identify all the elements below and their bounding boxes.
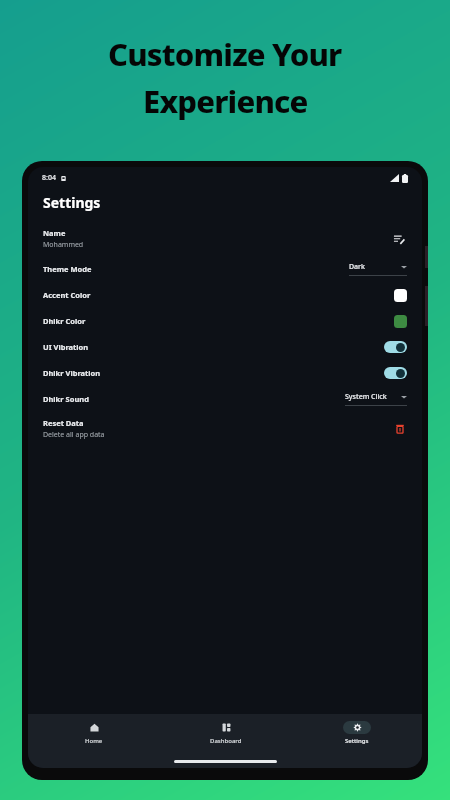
staticText: Settings <box>345 737 369 745</box>
staticText: Customize Your <box>108 33 342 75</box>
button[interactable]: Settings <box>291 714 422 752</box>
staticText: Home <box>85 737 103 745</box>
staticText: Dark <box>349 262 365 272</box>
staticText: Dhikr Vibration <box>43 368 101 378</box>
staticText: 8:04 <box>42 173 56 183</box>
staticText: Experience <box>143 80 308 122</box>
staticText: Mohammed <box>43 240 84 250</box>
staticText: Dhikr Sound <box>43 394 89 404</box>
staticText: Dhikr Color <box>43 316 86 326</box>
staticText: Theme Mode <box>43 264 92 274</box>
button[interactable]: Pick color <box>394 289 407 302</box>
button[interactable]: Dashboard <box>160 714 291 752</box>
button[interactable]: Home <box>28 714 160 752</box>
button[interactable]: Name <box>43 226 407 252</box>
other: Delete all app data <box>393 422 407 436</box>
button[interactable]: UI Vibration <box>43 334 407 360</box>
staticText: System Click <box>345 392 387 402</box>
staticText: UI Vibration <box>43 342 89 352</box>
button[interactable]: Reset Data <box>43 416 407 442</box>
button[interactable]: Dhikr Sound <box>43 386 407 412</box>
staticText: Dashboard <box>210 737 242 745</box>
button[interactable]: Toggle <box>384 341 407 353</box>
button[interactable]: Dhikr Color <box>43 308 407 334</box>
button[interactable]: Pick color <box>394 315 407 328</box>
staticText: Reset Data <box>43 418 84 428</box>
button[interactable]: Toggle <box>384 367 407 379</box>
staticText: Settings <box>43 193 101 212</box>
button[interactable]: Accent Color <box>43 282 407 308</box>
staticText: Name <box>43 228 66 238</box>
other: Edit name <box>391 231 407 247</box>
button[interactable]: Dhikr Vibration <box>43 360 407 386</box>
staticText: Delete all app data <box>43 430 105 440</box>
button[interactable]: Theme Mode <box>43 256 407 282</box>
staticText: Accent Color <box>43 290 91 300</box>
